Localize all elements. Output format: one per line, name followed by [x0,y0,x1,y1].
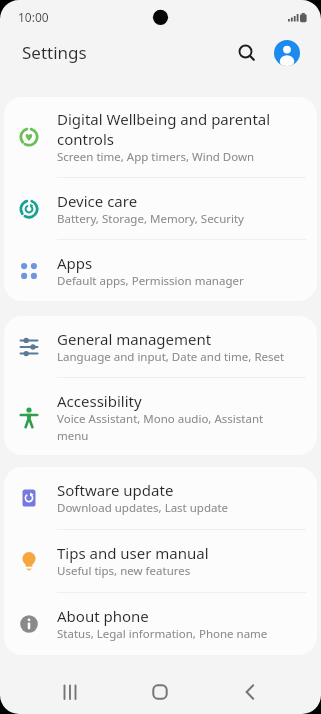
staticText: Battery, Storage, Memory, Security [57,211,244,227]
staticText: Status, Legal information, Phone name [57,626,268,642]
staticText: Accessibility [57,391,142,411]
button[interactable] [274,40,300,66]
staticText: Download updates, Last update [57,500,229,516]
button[interactable] [25,670,115,714]
button[interactable] [205,670,295,714]
staticText: Settings [22,41,87,64]
staticText: Default apps, Permission manager [57,273,244,289]
button[interactable]: Digital Wellbeing and parental controls [4,97,317,177]
staticText: Voice Assistant, Mono audio, Assistant m… [57,411,264,443]
staticText: Apps [57,253,93,273]
button[interactable]: Apps [4,240,317,301]
staticText: General management [57,329,212,349]
staticText: Software update [57,480,174,500]
button[interactable]: Device care [4,178,317,239]
button[interactable] [115,670,205,714]
button[interactable]: Tips and user manual [4,530,317,592]
staticText: Tips and user manual [57,543,209,563]
staticText: Digital Wellbeing and parental controls [57,109,271,149]
staticText: Language and input, Date and time, Reset [57,349,285,365]
button[interactable] [233,39,261,67]
staticText: 10:00 [18,9,49,25]
staticText: Screen time, App timers, Wind Down [57,149,255,165]
staticText: Useful tips, new features [57,563,191,579]
staticText: Device care [57,191,138,211]
button[interactable]: Software update [4,467,317,529]
button[interactable]: Accessibility [4,378,317,455]
button[interactable]: About phone [4,593,317,655]
staticText: About phone [57,606,149,626]
button[interactable]: General management [4,316,317,377]
